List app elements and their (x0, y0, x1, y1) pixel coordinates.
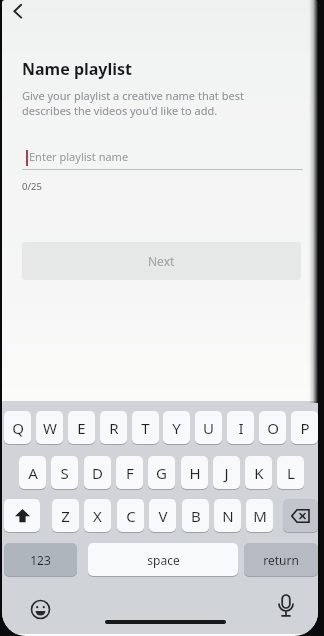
staticText: M (253, 506, 267, 526)
staticText: S (60, 463, 69, 483)
button[interactable]: N (214, 499, 241, 532)
staticText: O (267, 418, 279, 438)
button[interactable]: Z (52, 499, 79, 532)
staticText: C (126, 506, 136, 526)
button[interactable]: Y (163, 411, 190, 444)
button[interactable]: K (245, 456, 272, 489)
staticText: L (287, 463, 295, 483)
button[interactable]: M (246, 499, 273, 532)
staticText: Next (148, 253, 175, 269)
button[interactable]: H (181, 456, 208, 489)
staticText: Give your playlist a creative name that … (22, 88, 244, 118)
button[interactable] (4, 499, 40, 532)
button[interactable]: X (84, 499, 111, 532)
staticText: Q (12, 418, 24, 438)
staticText: J (224, 463, 229, 483)
staticText: I (238, 418, 244, 438)
staticText: N (222, 506, 234, 526)
staticText: G (156, 463, 167, 483)
button[interactable] (276, 594, 296, 619)
staticText: V (158, 506, 168, 526)
staticText: Name playlist (22, 58, 133, 80)
button[interactable]: O (259, 411, 286, 444)
button[interactable]: W (36, 411, 63, 444)
staticText: K (254, 463, 264, 483)
button[interactable] (31, 600, 50, 619)
button[interactable]: J (213, 456, 240, 489)
staticText: space (147, 552, 180, 568)
button[interactable]: U (195, 411, 222, 444)
staticText: H (189, 463, 201, 483)
button[interactable]: T (132, 411, 159, 444)
button[interactable]: E (68, 411, 95, 444)
button[interactable]: return (244, 543, 318, 576)
button[interactable]: P (291, 411, 318, 444)
staticText: W (43, 418, 57, 438)
staticText: E (77, 418, 86, 438)
staticText: B (191, 506, 201, 526)
button[interactable]: D (84, 456, 111, 489)
button[interactable] (283, 499, 318, 532)
button[interactable]: Q (4, 411, 31, 444)
button[interactable] (13, 4, 23, 19)
staticText: R (109, 418, 119, 438)
staticText: Enter playlist name (29, 149, 129, 164)
button[interactable]: V (149, 499, 176, 532)
button[interactable]: Next (22, 242, 301, 280)
button[interactable]: F (116, 456, 143, 489)
button[interactable]: C (117, 499, 144, 532)
staticText: return (263, 552, 299, 568)
button[interactable]: L (277, 456, 304, 489)
button[interactable]: R (100, 411, 127, 444)
staticText: Z (61, 506, 70, 526)
button[interactable]: S (51, 456, 78, 489)
staticText: F (126, 463, 134, 483)
staticText: X (93, 506, 102, 526)
button[interactable]: A (19, 456, 46, 489)
staticText: 123 (30, 552, 51, 568)
button[interactable]: B (182, 499, 209, 532)
staticText: U (203, 418, 214, 438)
button[interactable]: space (88, 543, 238, 576)
button[interactable]: G (148, 456, 175, 489)
staticText: A (28, 463, 38, 483)
staticText: P (300, 418, 310, 438)
staticText: 0/25 (22, 180, 42, 193)
staticText: Y (172, 418, 181, 438)
staticText: T (141, 418, 150, 438)
staticText: D (92, 463, 103, 483)
button[interactable]: 123 (4, 543, 77, 576)
button[interactable]: I (227, 411, 254, 444)
